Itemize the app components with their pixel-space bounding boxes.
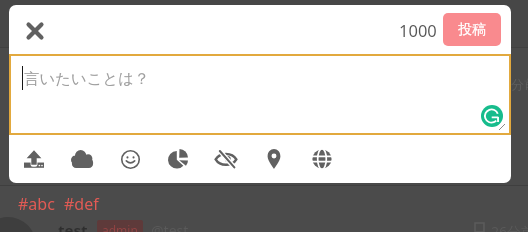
staticText: #abc [18,193,55,215]
staticText: 言いたいことは？ [24,69,150,88]
staticText: #def [64,193,99,215]
button[interactable]: Content warning [202,135,250,183]
button[interactable]: Close [15,11,55,51]
button[interactable]: Location [250,135,298,183]
staticText: 分前 [511,76,528,92]
staticText: 26分前 [491,222,528,232]
button[interactable]: 投稿 [443,13,501,46]
staticText: admin [102,222,138,232]
button[interactable]: Grammarly [481,105,503,127]
button[interactable]: Poll [154,135,202,183]
button[interactable]: Cloud drive [58,135,106,183]
staticText: @test [151,221,189,232]
staticText: test [58,220,88,232]
button[interactable]: Emoji [106,135,154,183]
staticText: 投稿 [458,21,486,39]
button[interactable]: Language [298,135,346,183]
staticText: 1000 [399,19,437,41]
button[interactable]: Upload media [10,135,58,183]
